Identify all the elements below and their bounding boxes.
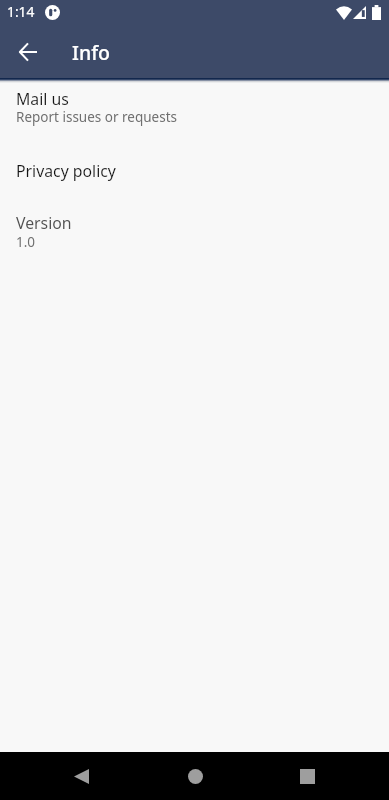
- staticText: 1:14: [7, 2, 35, 21]
- button[interactable]: Recent apps: [283, 752, 331, 800]
- staticText: Privacy policy: [16, 160, 116, 182]
- button[interactable]: Home: [171, 752, 219, 800]
- other: Mobile signal: [353, 6, 366, 19]
- staticText: Mail us: [16, 88, 69, 110]
- button[interactable]: Navigate up: [4, 28, 52, 76]
- other: Battery: [372, 5, 381, 20]
- staticText: Info: [72, 39, 111, 66]
- other: Wi-Fi: [336, 6, 352, 20]
- staticText: 1.0: [16, 233, 36, 251]
- button[interactable]: Back: [57, 752, 105, 800]
- button[interactable]: Mail us: [0, 82, 389, 134]
- staticText: Version: [16, 212, 72, 234]
- other: Notification: [45, 5, 60, 20]
- staticText: Report issues or requests: [16, 108, 178, 126]
- button[interactable]: Version: [0, 205, 389, 257]
- button[interactable]: Privacy policy: [0, 148, 389, 188]
